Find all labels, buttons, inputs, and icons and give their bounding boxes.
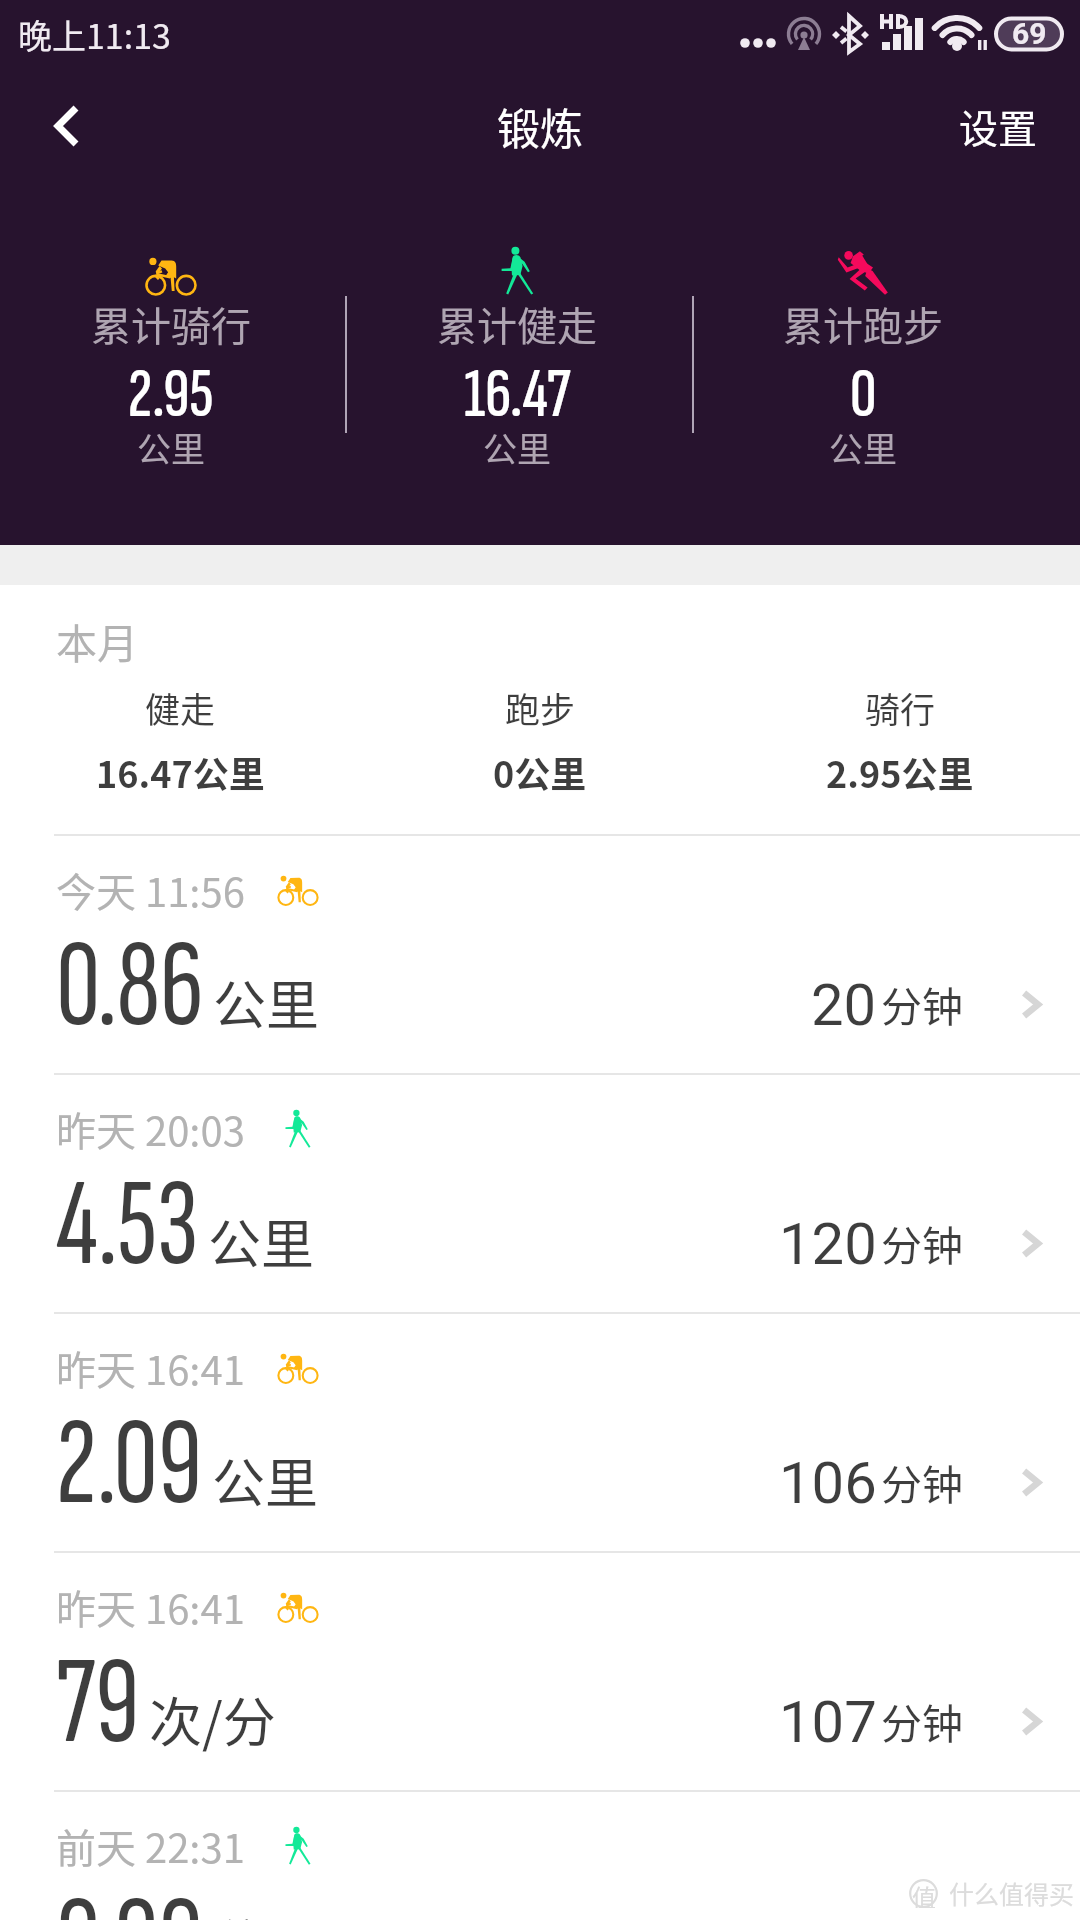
- staticText: 0.00: [56, 1869, 203, 1920]
- staticText: 0.86: [56, 913, 204, 1061]
- staticText: 晚上11:13: [18, 10, 171, 59]
- button[interactable]: 昨天 16:41: [0, 1312, 1080, 1551]
- button[interactable]: 今天 11:56: [0, 834, 1080, 1073]
- staticText: 分钟: [881, 974, 963, 1033]
- staticText: 昨天 20:03: [56, 1100, 245, 1158]
- button[interactable]: 设置: [959, 76, 1038, 176]
- staticText: 4.53: [56, 1152, 199, 1300]
- staticText: 本月: [56, 611, 138, 670]
- staticText: 昨天 16:41: [56, 1578, 245, 1636]
- staticText: 值: [912, 1879, 936, 1908]
- staticText: 0: [850, 352, 877, 437]
- staticText: 106: [779, 1449, 877, 1517]
- staticText: 今天 11:56: [56, 861, 245, 919]
- staticText: 16.47公里: [96, 746, 265, 798]
- staticText: 16.47: [464, 352, 571, 437]
- staticText: 健走: [145, 682, 216, 733]
- button[interactable]: 昨天 20:03: [0, 1073, 1080, 1312]
- staticText: 107: [779, 1688, 877, 1756]
- staticText: 累计健走: [437, 295, 597, 353]
- staticText: 79: [56, 1630, 140, 1778]
- staticText: 2.09: [56, 1391, 203, 1539]
- staticText: 跑步: [505, 682, 576, 733]
- staticText: 公里: [212, 1902, 318, 1920]
- staticText: 昨天 16:41: [56, 1339, 245, 1397]
- staticText: 设置: [959, 98, 1038, 154]
- staticText: 什么值得买: [949, 1875, 1075, 1911]
- staticText: 前天 22:31: [56, 1817, 245, 1875]
- staticText: 20: [811, 971, 877, 1039]
- staticText: 分钟: [881, 1213, 963, 1272]
- staticText: 骑行: [865, 682, 936, 733]
- staticText: 分钟: [881, 1452, 963, 1511]
- button[interactable]: 昨天 16:41: [0, 1551, 1080, 1790]
- staticText: 120: [779, 1210, 877, 1278]
- button[interactable]: 前天 22:31: [0, 1790, 1080, 1920]
- staticText: 0公里: [493, 746, 587, 798]
- staticText: 公里: [213, 964, 319, 1041]
- staticText: 公里: [483, 423, 551, 472]
- staticText: 次/分: [149, 1681, 276, 1758]
- button[interactable]: Back: [0, 76, 116, 176]
- staticText: 69: [1012, 16, 1047, 51]
- staticText: 2.95公里: [826, 746, 974, 798]
- staticText: 公里: [212, 1442, 318, 1519]
- staticText: 累计跑步: [783, 295, 943, 353]
- staticText: 锻炼: [497, 95, 583, 157]
- staticText: 累计骑行: [91, 295, 251, 353]
- staticText: 公里: [829, 423, 897, 472]
- staticText: 2.95: [128, 352, 214, 437]
- staticText: 分钟: [881, 1691, 963, 1750]
- staticText: 公里: [208, 1203, 314, 1280]
- staticText: 公里: [137, 423, 205, 472]
